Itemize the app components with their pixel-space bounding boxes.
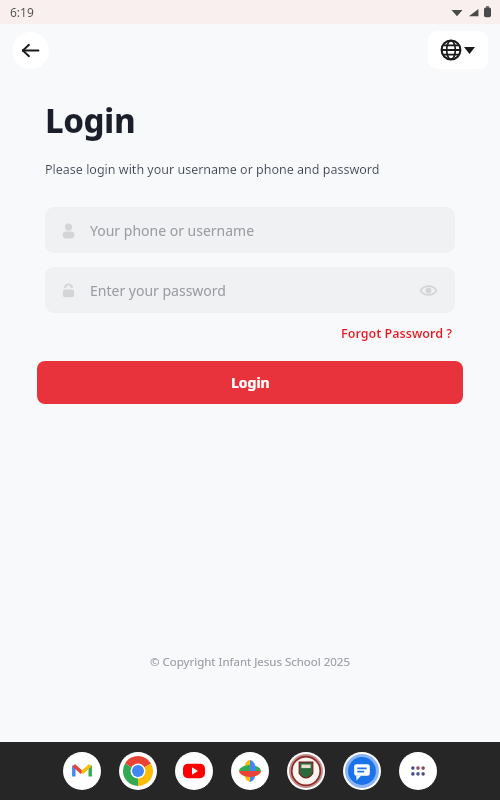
button[interactable]: Back (12, 32, 49, 69)
button[interactable]: Forgot Password ? (339, 323, 455, 344)
button[interactable]: Change language (428, 31, 488, 69)
button[interactable]: Gmail (63, 752, 101, 790)
staticText: Login (45, 98, 136, 143)
staticText: Forgot Password ? (341, 325, 453, 342)
staticText: Please login with your username or phone… (45, 161, 380, 178)
button[interactable]: School app (287, 752, 325, 790)
button[interactable]: YouTube (175, 752, 213, 790)
staticText: Enter your password (90, 281, 417, 300)
staticText: 6:19 (10, 4, 34, 20)
button[interactable]: Show password (417, 279, 439, 301)
staticText: Login (231, 373, 270, 392)
button[interactable]: Messages (343, 752, 381, 790)
button[interactable]: All apps (399, 752, 437, 790)
button[interactable]: Chrome (119, 752, 157, 790)
button[interactable]: Your phone or username (45, 207, 455, 253)
staticText: Your phone or username (90, 221, 439, 240)
button[interactable]: Login (37, 361, 463, 404)
button[interactable]: Photos (231, 752, 269, 790)
button[interactable]: Enter your password (45, 267, 455, 313)
staticText: © Copyright Infant Jesus School 2025 (0, 654, 500, 670)
